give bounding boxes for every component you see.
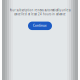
staticText: Your subscription renews automatically u…	[9, 8, 70, 12]
staticText: Continue	[33, 24, 47, 28]
button[interactable]: Continue	[28, 22, 52, 30]
staticText: cancelled at least 24 hours in advance	[14, 12, 66, 16]
